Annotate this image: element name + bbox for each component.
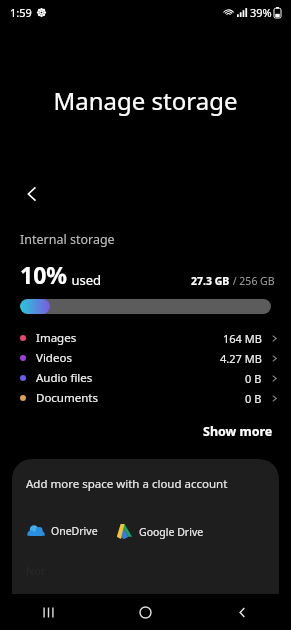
staticText: Google Drive [139, 525, 204, 539]
staticText: used [68, 271, 101, 289]
button[interactable]: Show more [185, 416, 291, 447]
button[interactable]: Google Drive [115, 522, 204, 541]
button[interactable]: Back [194, 594, 291, 630]
staticText: 1:59 [10, 5, 32, 20]
button[interactable]: Images [0, 328, 291, 348]
staticText: Audio files [36, 370, 93, 386]
staticText: 164 MB [223, 331, 262, 346]
staticText: 10% [20, 259, 68, 290]
button[interactable]: Recents [0, 594, 97, 630]
button[interactable]: Documents [0, 388, 291, 408]
staticText: Manage storage [0, 84, 291, 117]
staticText: OneDrive [51, 524, 98, 538]
staticText: 4.27 MB [220, 351, 262, 366]
staticText: Show more [203, 423, 273, 440]
staticText: Images [36, 330, 77, 346]
button[interactable]: Back [12, 174, 52, 214]
button[interactable]: Home [97, 594, 194, 630]
button[interactable]: OneDrive [26, 521, 98, 541]
staticText: 0 B [245, 371, 262, 386]
staticText: / 256 GB [230, 274, 275, 288]
staticText: 0 B [245, 391, 262, 406]
staticText: Internal storage [20, 231, 115, 248]
button[interactable]: Audio files [0, 368, 291, 388]
staticText: Videos [36, 350, 72, 366]
staticText: Documents [36, 390, 98, 406]
button[interactable]: Videos [0, 348, 291, 368]
staticText: 39% [250, 5, 272, 20]
staticText: 27.3 GB [191, 274, 230, 288]
staticText: Add more space with a cloud account [26, 476, 228, 492]
